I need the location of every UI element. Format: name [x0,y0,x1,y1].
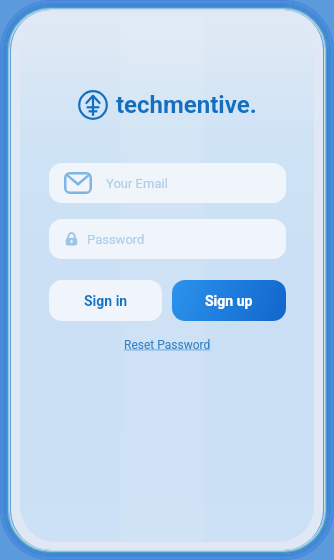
button[interactable]: Sign up [172,280,286,321]
button[interactable]: Reset Password [120,334,215,356]
staticText: Your Email [106,176,168,191]
staticText: Sign up [205,293,253,309]
staticText: Password [87,232,145,247]
staticText: Sign in [84,293,128,309]
staticText: Reset Password [124,338,211,352]
button[interactable]: Password [49,219,286,259]
staticText: techmentive. [116,91,257,119]
other: techmentive logo [78,90,108,120]
button[interactable]: Sign in [49,280,162,321]
button[interactable]: Your Email [49,163,286,203]
